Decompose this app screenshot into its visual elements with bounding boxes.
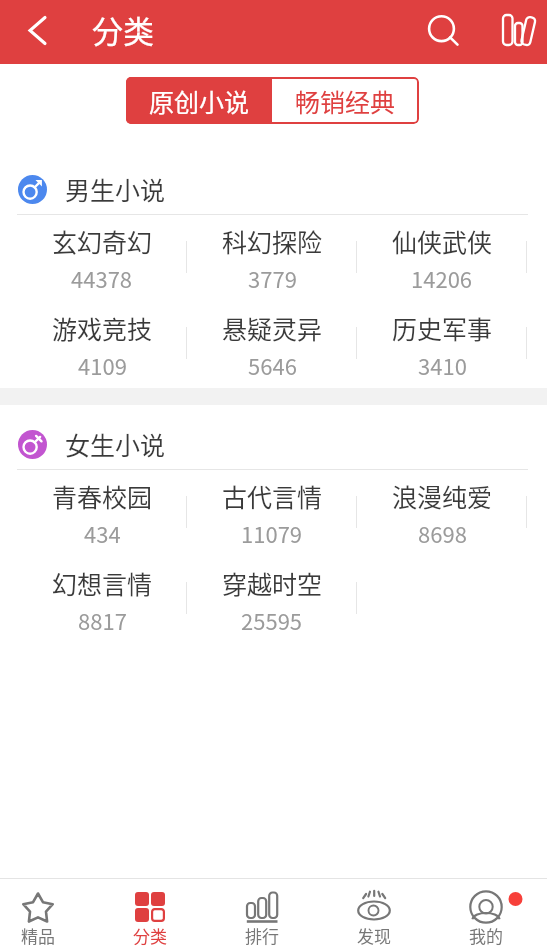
button[interactable]: 浪漫纯爱: [357, 470, 527, 557]
staticText: 古代言情: [222, 478, 323, 514]
staticText: 精品: [21, 923, 55, 946]
staticText: 发现: [357, 923, 391, 946]
button[interactable]: 古代言情: [187, 470, 357, 557]
button[interactable]: 分类: [95, 879, 205, 946]
staticText: 我的: [469, 923, 503, 946]
staticText: 仙侠武侠: [392, 223, 493, 259]
staticText: 14206: [411, 262, 473, 294]
button[interactable]: 原创小说: [126, 77, 272, 124]
button[interactable]: 游戏竞技: [17, 302, 187, 388]
staticText: 11079: [241, 517, 303, 549]
staticText: 原创小说: [149, 83, 250, 119]
button[interactable]: 畅销经典: [272, 77, 419, 124]
button[interactable]: 幻想言情: [17, 557, 187, 643]
staticText: 穿越时空: [222, 565, 323, 601]
button[interactable]: 青春校园: [17, 470, 187, 557]
staticText: 44378: [71, 262, 133, 294]
button[interactable]: 排行: [207, 879, 317, 946]
staticText: 分类: [133, 923, 167, 946]
button[interactable]: 穿越时空: [187, 557, 357, 643]
button[interactable]: 精品: [0, 879, 93, 946]
staticText: 科幻探险: [222, 223, 323, 259]
staticText: 浪漫纯爱: [392, 478, 493, 514]
button[interactable]: Bookshelf: [490, 0, 547, 64]
staticText: 幻想言情: [52, 565, 153, 601]
staticText: 434: [84, 517, 121, 549]
staticText: 青春校园: [52, 478, 153, 514]
staticText: 男生小说: [65, 171, 166, 207]
button[interactable]: 我的: [431, 879, 541, 946]
button[interactable]: 仙侠武侠: [357, 215, 527, 302]
staticText: 分类: [92, 7, 154, 52]
staticText: 悬疑灵异: [222, 310, 323, 346]
button[interactable]: 发现: [319, 879, 429, 946]
staticText: 5646: [248, 349, 297, 381]
button[interactable]: 悬疑灵异: [187, 302, 357, 388]
staticText: 8817: [78, 604, 127, 636]
button[interactable]: 历史军事: [357, 302, 527, 388]
staticText: 25595: [241, 604, 303, 636]
staticText: 4109: [78, 349, 127, 381]
staticText: 历史军事: [392, 310, 493, 346]
staticText: 女生小说: [65, 426, 166, 462]
staticText: 游戏竞技: [52, 310, 153, 346]
button[interactable]: Back: [6, 0, 64, 64]
button[interactable]: Search: [412, 0, 472, 64]
staticText: 玄幻奇幻: [52, 223, 153, 259]
button[interactable]: 玄幻奇幻: [17, 215, 187, 302]
staticText: 排行: [245, 923, 279, 946]
staticText: 畅销经典: [295, 83, 396, 119]
staticText: 3779: [248, 262, 297, 294]
staticText: 8698: [418, 517, 467, 549]
button[interactable]: 科幻探险: [187, 215, 357, 302]
staticText: 3410: [418, 349, 467, 381]
